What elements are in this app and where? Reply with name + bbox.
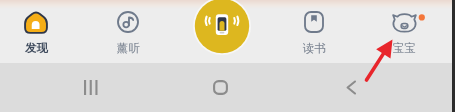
button[interactable]: 宝宝	[370, 0, 438, 63]
staticText: 发现	[25, 41, 48, 55]
button[interactable]: 薰听	[94, 0, 162, 63]
staticText: 读书	[303, 41, 326, 55]
button[interactable]: Home	[213, 80, 228, 95]
button[interactable]: 读书	[280, 0, 348, 63]
button[interactable]: Recent apps	[84, 80, 102, 95]
staticText: 宝宝	[393, 41, 416, 55]
button[interactable]: Listen	[193, 0, 251, 55]
button[interactable]: 发现	[2, 0, 70, 63]
button[interactable]: Back	[346, 80, 357, 95]
staticText: 薰听	[117, 41, 140, 55]
